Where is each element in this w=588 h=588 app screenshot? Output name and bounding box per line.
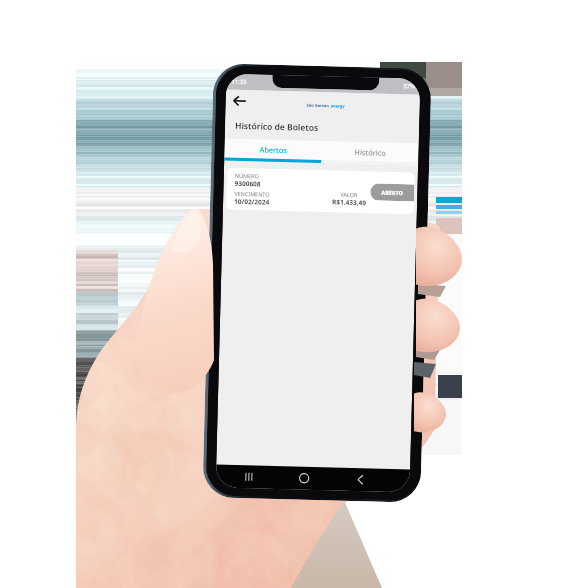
staticText: Histórico de Boletos <box>235 120 319 134</box>
staticText: São Gerson <box>307 103 330 108</box>
staticText: 11:33 <box>231 78 247 86</box>
staticText: VENCIMENTO <box>234 190 270 198</box>
button[interactable]: NÚMERO <box>226 168 415 214</box>
button[interactable]: Abertos <box>224 138 322 160</box>
staticText: R$1.433,49 <box>332 197 366 207</box>
staticText: energy <box>330 103 345 109</box>
staticText: VALOR <box>340 191 358 198</box>
staticText: Abertos <box>259 144 288 155</box>
staticText: 10/02/2024 <box>234 197 270 207</box>
staticText: 57% <box>403 82 415 90</box>
staticText: Histórico <box>354 147 387 158</box>
staticText: ABERTO <box>381 189 403 196</box>
staticText: 9300608 <box>234 179 262 188</box>
button[interactable]: Back <box>233 95 247 107</box>
button[interactable]: ABERTO <box>370 183 415 201</box>
staticText: NÚMERO <box>235 172 259 179</box>
button[interactable]: Histórico <box>321 141 419 163</box>
